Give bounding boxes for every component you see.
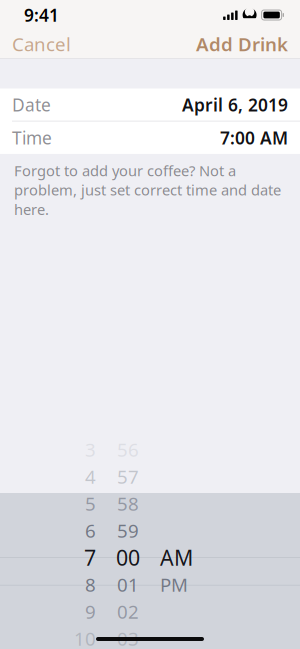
staticText: 7: [84, 543, 96, 572]
staticText: 00: [116, 543, 140, 572]
button[interactable]: Time: [0, 122, 300, 154]
button[interactable]: Add Drink: [184, 26, 300, 62]
staticText: Forgot to add your coffee? Not a problem…: [14, 161, 281, 219]
staticText: 56: [117, 437, 139, 462]
staticText: 4: [85, 464, 96, 489]
staticText: Date: [12, 93, 51, 116]
staticText: 5: [85, 491, 96, 516]
staticText: 3: [85, 437, 96, 462]
staticText: Add Drink: [196, 32, 288, 56]
button[interactable]: Cancel: [0, 26, 83, 62]
staticText: 58: [117, 491, 139, 516]
staticText: 8: [85, 572, 96, 597]
staticText: Cancel: [12, 32, 71, 56]
staticText: 57: [117, 464, 139, 489]
button[interactable]: Date: [0, 89, 300, 121]
staticText: 9: [85, 599, 96, 624]
staticText: AM: [160, 543, 193, 572]
staticText: PM: [160, 572, 188, 597]
staticText: 9:41: [24, 3, 59, 26]
staticText: 02: [117, 599, 139, 624]
staticText: 7:00 AM: [220, 126, 288, 149]
staticText: 6: [85, 518, 96, 543]
staticText: April 6, 2019: [182, 93, 288, 116]
staticText: 59: [117, 518, 139, 543]
staticText: 10: [74, 626, 96, 649]
staticText: Time: [12, 126, 52, 149]
staticText: 03: [117, 626, 139, 649]
staticText: 01: [117, 572, 139, 597]
